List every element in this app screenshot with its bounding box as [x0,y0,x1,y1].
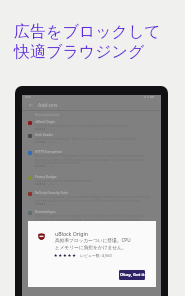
staticText: Okay, Got it [120,272,145,278]
button[interactable]: Back [26,100,35,109]
staticText: Add-ons [38,102,58,109]
button[interactable]: HTTPS Everywhere [22,150,161,168]
staticText: Recommended [35,112,60,117]
staticText: HTTPS Everywhere [35,150,63,154]
staticText: 高効率ブロッカーついに登場。CPU とメモリーに負担をかけません。 [55,237,131,250]
staticText: uBlock Origin [55,230,88,237]
staticText: uBlock Origin [35,120,55,124]
button[interactable]: Decentraleyes [22,210,161,224]
button[interactable]: NoScript Security Suite [22,191,161,205]
button[interactable]: Okay, Got it [119,270,145,280]
staticText: Privacy Badger [35,175,57,179]
staticText: Dark Reader [35,133,54,137]
staticText: レビュー数: 4,560 [80,253,112,258]
button[interactable]: Dark Reader [22,133,161,144]
button[interactable]: Privacy Badger [22,175,161,186]
button[interactable]: uBlock Origin [22,120,161,131]
staticText: NoScript Security Suite [35,191,68,195]
staticText: 広告をブロックして 快適ブラウジング [14,22,161,61]
staticText: Decentraleyes [35,210,56,214]
